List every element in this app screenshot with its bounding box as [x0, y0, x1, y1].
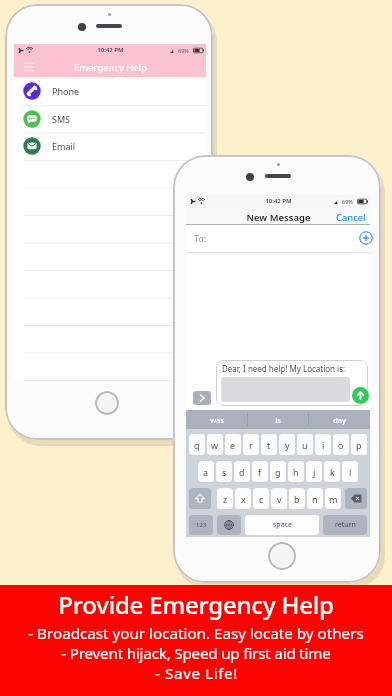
staticText: Cancel — [336, 211, 366, 224]
button[interactable]: v — [271, 488, 287, 509]
button[interactable]: t — [261, 434, 277, 455]
staticText: day — [333, 415, 346, 425]
button[interactable]: r — [243, 434, 259, 455]
button[interactable]: Provide Emergency Help — [0, 585, 392, 696]
staticText: s — [222, 466, 227, 478]
staticText: To: — [194, 232, 207, 244]
button[interactable] — [345, 488, 367, 509]
staticText: Provide Emergency Help — [58, 588, 334, 621]
staticText: t — [267, 439, 271, 451]
staticText: Emergency Help — [74, 61, 147, 74]
staticText: 10:42 PM — [97, 46, 124, 54]
staticText: v — [277, 493, 282, 505]
button[interactable]: g — [270, 461, 286, 482]
staticText: p — [356, 439, 362, 451]
staticText: r — [249, 439, 253, 451]
staticText: 69% — [178, 47, 189, 54]
button[interactable]: u — [297, 434, 313, 455]
staticText: e — [230, 439, 236, 451]
staticText: l — [349, 466, 352, 478]
staticText: SMS — [52, 113, 71, 125]
staticText: u — [302, 439, 308, 451]
staticText: was — [210, 415, 224, 425]
button[interactable] — [352, 387, 369, 404]
staticText: h — [293, 466, 299, 478]
staticText: - Save Life! — [155, 663, 238, 684]
staticText: 10:42 PM — [265, 197, 292, 205]
button[interactable] — [189, 488, 211, 509]
button[interactable]: space — [245, 515, 319, 535]
staticText: a — [203, 466, 209, 478]
staticText: k — [330, 466, 335, 478]
button[interactable]: i — [315, 434, 331, 455]
button[interactable]: z — [217, 488, 233, 509]
button[interactable]: f — [252, 461, 268, 482]
button[interactable]: b — [289, 488, 305, 509]
staticText: j — [313, 466, 316, 478]
staticText: n — [312, 493, 318, 505]
staticText: Email — [52, 140, 76, 152]
button[interactable]: y — [279, 434, 295, 455]
button[interactable] — [14, 77, 206, 105]
button[interactable]: a — [198, 461, 214, 482]
button[interactable]: q — [189, 434, 205, 455]
staticText: - Prevent hijack, Speed up first aid tim… — [61, 643, 331, 664]
staticText: b — [294, 493, 300, 505]
button[interactable]: d — [234, 461, 250, 482]
staticText: - Broadcast your location. Easy locate b… — [28, 623, 364, 644]
staticText: z — [223, 493, 228, 505]
staticText: g — [275, 466, 281, 478]
button[interactable]: return — [323, 515, 367, 535]
staticText: q — [194, 439, 200, 451]
button[interactable]: j — [306, 461, 322, 482]
button[interactable] — [14, 132, 206, 160]
button[interactable]: c — [253, 488, 269, 509]
button[interactable] — [22, 60, 38, 76]
staticText: f — [258, 466, 262, 478]
button[interactable] — [14, 105, 206, 133]
button[interactable] — [217, 515, 241, 535]
button[interactable]: l — [342, 461, 358, 482]
button[interactable]: Cancel — [326, 211, 366, 224]
staticText: 69% — [342, 198, 353, 205]
staticText: m — [329, 493, 338, 505]
button[interactable]: x — [235, 488, 251, 509]
button[interactable] — [359, 231, 373, 245]
staticText: is — [275, 415, 281, 425]
staticText: Phone — [52, 85, 80, 97]
button[interactable]: e — [225, 434, 241, 455]
staticText: return — [335, 520, 356, 530]
button[interactable]: k — [324, 461, 340, 482]
button[interactable]: m — [325, 488, 341, 509]
button[interactable]: 123 — [189, 515, 213, 535]
button[interactable]: n — [307, 488, 323, 509]
button[interactable]: s — [216, 461, 232, 482]
staticText: d — [239, 466, 245, 478]
button[interactable]: p — [351, 434, 367, 455]
staticText: x — [241, 493, 246, 505]
staticText: o — [338, 439, 344, 451]
staticText: New Message — [246, 211, 311, 224]
button[interactable] — [193, 391, 211, 405]
staticText: 123 — [196, 521, 207, 529]
button[interactable]: h — [288, 461, 304, 482]
staticText: y — [285, 439, 290, 451]
staticText: space — [273, 520, 292, 530]
button[interactable]: w — [207, 434, 223, 455]
staticText: c — [259, 493, 264, 505]
staticText: i — [322, 439, 325, 451]
button[interactable]: o — [333, 434, 349, 455]
staticText: Dear, I need help! My Location is: — [222, 363, 346, 374]
staticText: w — [211, 439, 219, 451]
